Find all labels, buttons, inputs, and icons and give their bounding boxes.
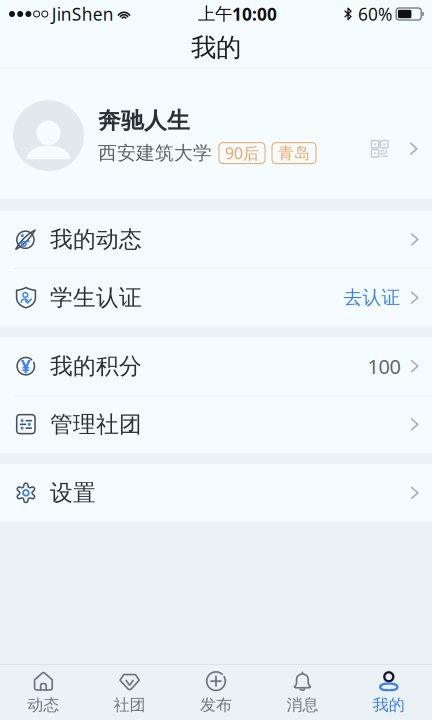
button[interactable]: 我的 <box>346 665 432 720</box>
button[interactable]: 社团 <box>86 665 173 720</box>
staticText: 奔驰人生 <box>98 107 190 135</box>
staticText: 发布 <box>200 695 232 715</box>
staticText: 设置 <box>50 479 96 507</box>
button[interactable]: 奔驰人生 <box>0 68 432 199</box>
button[interactable]: 动态 <box>0 665 86 720</box>
button[interactable]: 设置 <box>0 464 432 522</box>
staticText: 我的 <box>373 695 405 715</box>
button[interactable]: ¥ <box>0 337 432 395</box>
button[interactable]: 学生认证 <box>0 269 432 326</box>
staticText: 上午 <box>198 3 232 25</box>
staticText: 10:00 <box>232 2 277 25</box>
staticText: 管理社团 <box>50 410 142 438</box>
staticText: 消息 <box>286 695 318 715</box>
staticText: JinShen <box>52 2 114 25</box>
staticText: 西安建筑大学 <box>98 142 212 165</box>
staticText: 我的动态 <box>50 225 142 253</box>
staticText: 60% <box>358 2 392 25</box>
staticText: 去认证 <box>344 286 401 309</box>
staticText: 我的 <box>191 32 241 63</box>
button[interactable]: 消息 <box>259 665 346 720</box>
staticText: 社团 <box>114 695 146 715</box>
staticText: 动态 <box>27 695 59 715</box>
staticText: 我的积分 <box>50 352 142 380</box>
button[interactable]: 发布 <box>173 665 259 720</box>
staticText: ¥ <box>21 355 31 378</box>
staticText: 学生认证 <box>50 284 142 311</box>
staticText: 90后 <box>225 142 259 164</box>
staticText: 100 <box>368 353 401 379</box>
button[interactable]: 我的动态 <box>0 211 432 268</box>
staticText: 青岛 <box>278 143 310 163</box>
button[interactable]: 管理社团 <box>0 396 432 453</box>
